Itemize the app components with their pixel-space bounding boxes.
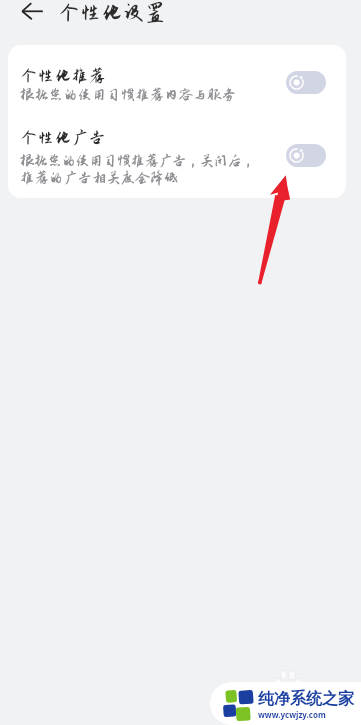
staticText: 个性化设置 <box>58 1 166 25</box>
button[interactable]: 个性化推荐 <box>8 45 346 119</box>
staticText: 纯净系统之家 <box>258 689 354 709</box>
other: Pointer arrow <box>250 170 300 292</box>
staticText: 推荐的广告相关度会降低 <box>20 170 179 186</box>
button[interactable]: 个性化广告 <box>8 119 346 198</box>
staticText: 根据您的使用习惯推荐广告，关闭后， <box>20 153 255 169</box>
button[interactable]: Back <box>16 2 46 26</box>
staticText: 个性化推荐 <box>20 66 106 85</box>
button[interactable]: Toggle <box>286 71 326 94</box>
staticText: www.ycwjzy.com <box>258 709 326 720</box>
staticText: 个性化广告 <box>20 128 106 147</box>
button[interactable]: Toggle <box>286 144 326 167</box>
staticText: 根据您的使用习惯推荐内容与服务 <box>20 87 237 103</box>
